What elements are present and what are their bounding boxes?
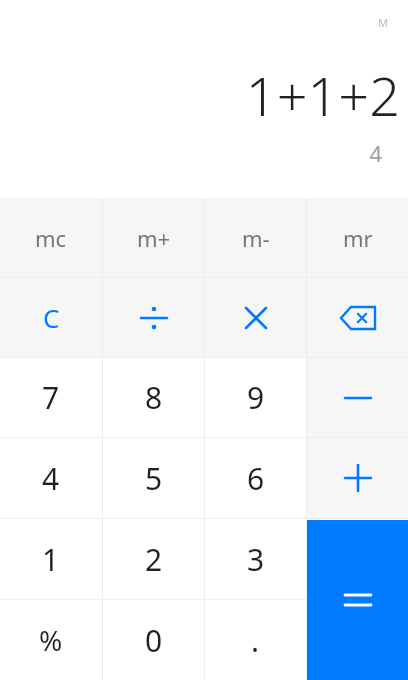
staticText: 0: [145, 620, 163, 661]
staticText: M: [378, 15, 388, 30]
staticText: 7: [42, 377, 60, 418]
button[interactable]: Equals: [307, 520, 408, 680]
staticText: 1: [42, 539, 60, 580]
button[interactable]: 8: [103, 358, 204, 437]
button[interactable]: 0: [103, 600, 204, 680]
staticText: 4: [369, 138, 382, 168]
button[interactable]: .: [205, 600, 306, 680]
button[interactable]: 4: [0, 438, 102, 518]
button[interactable]: Plus: [307, 438, 408, 518]
staticText: mc: [35, 223, 67, 253]
button[interactable]: mc: [0, 198, 102, 277]
button[interactable]: 6: [205, 438, 306, 518]
button[interactable]: C: [0, 278, 102, 357]
button[interactable]: 5: [103, 438, 204, 518]
button[interactable]: 7: [0, 358, 102, 437]
button[interactable]: Minus: [307, 358, 408, 437]
button[interactable]: Divide: [103, 278, 204, 357]
button[interactable]: mr: [307, 198, 408, 277]
staticText: %: [39, 621, 63, 659]
button[interactable]: 2: [103, 519, 204, 599]
button[interactable]: 9: [205, 358, 306, 437]
staticText: 2: [145, 539, 163, 580]
staticText: 6: [247, 458, 265, 499]
staticText: 3: [247, 539, 265, 580]
button[interactable]: m-: [205, 198, 306, 277]
button[interactable]: Backspace: [307, 278, 408, 357]
staticText: m-: [242, 223, 270, 253]
staticText: 4: [42, 458, 60, 499]
staticText: mr: [343, 223, 373, 253]
staticText: C: [43, 300, 60, 335]
staticText: 1+1+2: [245, 58, 400, 132]
button[interactable]: m+: [103, 198, 204, 277]
button[interactable]: %: [0, 600, 102, 680]
staticText: 8: [145, 377, 163, 418]
staticText: m+: [137, 223, 171, 253]
staticText: 9: [247, 377, 265, 418]
staticText: .: [251, 620, 260, 661]
button[interactable]: 3: [205, 519, 306, 599]
staticText: 5: [145, 458, 163, 499]
button[interactable]: Multiply: [205, 278, 306, 357]
button[interactable]: 1: [0, 519, 102, 599]
